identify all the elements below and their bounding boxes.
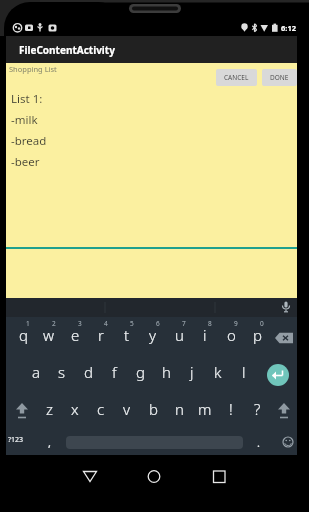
staticText: l bbox=[242, 362, 246, 382]
button[interactable]: i bbox=[192, 324, 218, 346]
staticText: Shopping List bbox=[9, 64, 57, 74]
staticText: 7 bbox=[182, 319, 186, 327]
staticText: s bbox=[58, 362, 66, 382]
staticText: ! bbox=[229, 399, 233, 419]
staticText: t bbox=[124, 325, 130, 345]
button[interactable]: f bbox=[101, 361, 127, 383]
button[interactable] bbox=[70, 462, 126, 492]
button[interactable]: j bbox=[179, 361, 205, 383]
button[interactable]: ! bbox=[218, 398, 244, 420]
staticText: u bbox=[175, 325, 184, 345]
staticText: . bbox=[257, 435, 260, 449]
staticText: h bbox=[162, 362, 171, 382]
button[interactable]: k bbox=[205, 361, 231, 383]
staticText: -beer bbox=[11, 154, 40, 170]
staticText: o bbox=[227, 325, 236, 345]
button[interactable]: g bbox=[127, 361, 153, 383]
staticText: c bbox=[97, 399, 105, 419]
staticText: 8 bbox=[208, 319, 212, 327]
staticText: f bbox=[112, 362, 117, 382]
staticText: r bbox=[98, 325, 104, 345]
button[interactable]: l bbox=[231, 361, 257, 383]
staticText: -bread bbox=[11, 133, 47, 149]
button[interactable]: a bbox=[23, 361, 49, 383]
button[interactable]: n bbox=[166, 398, 192, 420]
staticText: g bbox=[136, 362, 145, 382]
button[interactable]: u bbox=[166, 324, 192, 346]
staticText: -milk bbox=[11, 112, 38, 128]
button[interactable]: x bbox=[62, 398, 88, 420]
staticText: DONE bbox=[270, 73, 289, 82]
button[interactable]: t bbox=[114, 324, 140, 346]
button[interactable] bbox=[183, 462, 240, 492]
staticText: z bbox=[46, 399, 53, 419]
button[interactable]: y bbox=[140, 324, 166, 346]
staticText: 4 bbox=[104, 319, 108, 327]
button[interactable]: m bbox=[192, 398, 218, 420]
button[interactable]: b bbox=[140, 398, 166, 420]
staticText: a bbox=[32, 362, 41, 382]
button[interactable]: DONE bbox=[262, 69, 297, 86]
staticText: y bbox=[149, 325, 157, 345]
button[interactable]: d bbox=[75, 361, 101, 383]
button[interactable]: z bbox=[36, 398, 62, 420]
button[interactable]: e bbox=[62, 324, 88, 346]
staticText: j bbox=[190, 362, 194, 382]
staticText: q bbox=[19, 325, 28, 345]
button[interactable]: v bbox=[114, 398, 140, 420]
staticText: e bbox=[71, 325, 80, 345]
staticText: FileContentActivity bbox=[19, 43, 115, 57]
staticText: k bbox=[214, 362, 222, 382]
staticText: 1 bbox=[26, 319, 30, 327]
staticText: , bbox=[48, 435, 51, 449]
staticText: d bbox=[84, 362, 93, 382]
button[interactable]: h bbox=[153, 361, 179, 383]
staticText: 9 bbox=[234, 319, 238, 327]
button[interactable]: w bbox=[36, 324, 62, 346]
staticText: 3 bbox=[78, 319, 82, 327]
staticText: p bbox=[253, 325, 262, 345]
staticText: ? bbox=[254, 399, 261, 419]
button[interactable]: q bbox=[10, 324, 36, 346]
button[interactable]: o bbox=[218, 324, 244, 346]
staticText: CANCEL bbox=[224, 73, 249, 82]
staticText: List 1: bbox=[11, 91, 43, 107]
staticText: v bbox=[123, 399, 131, 419]
staticText: 0 bbox=[260, 319, 264, 327]
staticText: 5 bbox=[130, 319, 134, 327]
button[interactable]: c bbox=[88, 398, 114, 420]
staticText: 6 bbox=[156, 319, 160, 327]
staticText: ?123 bbox=[8, 435, 24, 445]
staticText: n bbox=[175, 399, 184, 419]
button[interactable]: p bbox=[244, 324, 270, 346]
staticText: b bbox=[149, 399, 158, 419]
staticText: x bbox=[71, 399, 79, 419]
staticText: m bbox=[198, 399, 212, 419]
button[interactable]: s bbox=[49, 361, 75, 383]
staticText: i bbox=[203, 325, 207, 345]
staticText: 6:12 bbox=[281, 23, 296, 33]
button[interactable]: ? bbox=[244, 398, 270, 420]
button[interactable] bbox=[126, 462, 183, 492]
button[interactable]: CANCEL bbox=[216, 69, 257, 86]
button[interactable]: r bbox=[88, 324, 114, 346]
staticText: 2 bbox=[52, 319, 56, 327]
staticText: w bbox=[43, 325, 55, 345]
